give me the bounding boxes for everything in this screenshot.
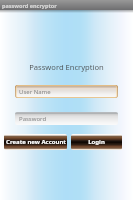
button[interactable]: Login <box>71 134 122 150</box>
staticText: User Name <box>19 88 51 96</box>
staticText: Password <box>19 115 47 123</box>
button[interactable]: Create new Account <box>4 134 67 150</box>
button[interactable]: User Name <box>15 85 118 98</box>
staticText: password encryptor <box>2 2 57 9</box>
staticText: Password Encryption <box>29 62 104 72</box>
staticText: Create new Account <box>6 138 66 146</box>
button[interactable]: Password <box>15 112 118 125</box>
staticText: Login <box>88 138 105 146</box>
